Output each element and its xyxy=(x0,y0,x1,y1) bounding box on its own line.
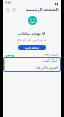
staticText: لم يتم العثور على أي نتائج xyxy=(17,38,47,42)
staticText: الطلب ١٢٣ xyxy=(44,53,58,57)
staticText: ٢٠٢٤/٠٣ xyxy=(48,57,58,61)
staticText: 9:41 xyxy=(5,1,12,5)
staticText: نشط xyxy=(7,55,13,58)
button[interactable]: نشط xyxy=(6,52,58,61)
button[interactable]: Search xyxy=(5,7,10,12)
staticText: الجوهرة الزرقاء xyxy=(36,65,58,70)
staticText: عنوان القسم xyxy=(42,59,58,63)
staticText: لا توجد بيانات xyxy=(18,31,46,37)
staticText: الصفحة الرئيسية xyxy=(26,7,59,12)
button[interactable]: إضافة جديد xyxy=(18,45,46,50)
staticText: ▮▮ xyxy=(55,2,59,5)
staticText: إضافة جديد xyxy=(25,46,39,50)
button[interactable]: Search xyxy=(5,6,59,13)
button[interactable]: Filter xyxy=(11,7,16,12)
